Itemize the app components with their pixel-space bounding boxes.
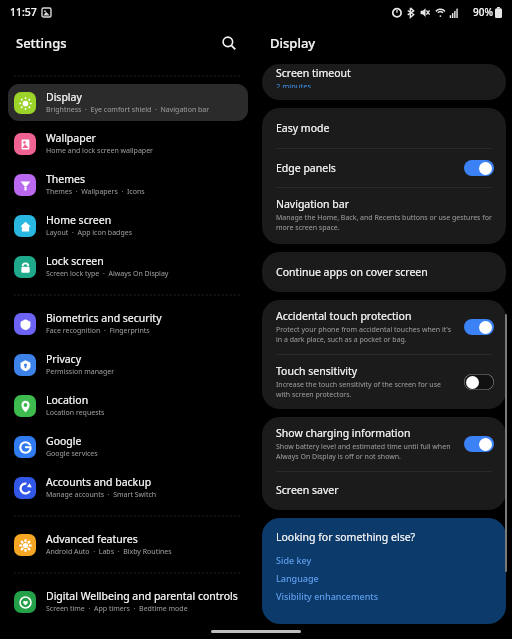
staticText: Brightness · Eye comfort shield · Naviga… xyxy=(46,105,210,115)
staticText: Visibility enhancements xyxy=(276,590,379,602)
button[interactable]: On xyxy=(464,160,494,176)
staticText: Manage the Home, Back, and Recents butto… xyxy=(276,213,494,233)
button[interactable]: Location xyxy=(8,387,248,424)
staticText: Easy mode xyxy=(276,121,330,135)
staticText: Android Auto · Labs · Bixby Routines xyxy=(46,547,172,557)
staticText: Increase the touch sensitivity of the sc… xyxy=(276,380,456,400)
staticText: Display xyxy=(46,90,82,104)
button[interactable]: Lock screen xyxy=(8,248,248,285)
staticText: Language xyxy=(276,572,319,584)
button[interactable]: Home screen xyxy=(8,207,248,244)
button[interactable]: Google xyxy=(8,428,248,465)
staticText: Biometrics and security xyxy=(46,311,162,325)
button[interactable]: On xyxy=(464,319,494,335)
button[interactable]: Edge panels xyxy=(262,149,506,187)
button[interactable]: Continue apps on cover screen xyxy=(262,252,506,292)
staticText: Screen timeout xyxy=(276,66,351,80)
staticText: Edge panels xyxy=(276,161,336,175)
button[interactable]: Search xyxy=(216,30,242,56)
staticText: Navigation bar xyxy=(276,197,350,211)
button[interactable]: Language xyxy=(276,569,492,587)
button[interactable]: Navigation bar xyxy=(262,188,506,244)
staticText: Screen saver xyxy=(276,483,339,497)
staticText: Google services xyxy=(46,449,98,459)
staticText: Permission manager xyxy=(46,367,115,377)
staticText: Advanced features xyxy=(46,532,138,546)
button[interactable]: Show charging information xyxy=(262,417,506,471)
staticText: Location xyxy=(46,393,89,407)
button[interactable]: Wallpaper xyxy=(8,125,248,162)
staticText: Face recognition · Fingerprints xyxy=(46,326,150,336)
staticText: Home and lock screen wallpaper xyxy=(46,146,153,156)
button[interactable]: Digital Wellbeing and parental controls xyxy=(8,583,248,620)
button[interactable]: Screen timeout xyxy=(262,64,506,100)
staticText: Manage accounts · Smart Switch xyxy=(46,490,157,500)
staticText: 90% xyxy=(473,5,493,19)
staticText: Touch sensitivity xyxy=(276,364,358,378)
staticText: Lock screen xyxy=(46,254,104,268)
staticText: 11:57 xyxy=(10,5,37,19)
button[interactable]: Side key xyxy=(276,551,492,569)
button[interactable]: Privacy xyxy=(8,346,248,383)
staticText: Side key xyxy=(276,554,312,566)
staticText: Wallpaper xyxy=(46,131,96,145)
button[interactable]: Advanced features xyxy=(8,526,248,563)
staticText: Accounts and backup xyxy=(46,475,152,489)
button[interactable]: Off xyxy=(464,374,494,390)
button[interactable]: Easy mode xyxy=(262,108,506,148)
staticText: Screen lock type · Always On Display xyxy=(46,269,169,279)
staticText: Looking for something else? xyxy=(276,530,416,544)
staticText: Themes xyxy=(46,172,86,186)
staticText: Layout · App icon badges xyxy=(46,228,133,238)
button[interactable]: Accidental touch protection xyxy=(262,300,506,354)
staticText: 2 minutes xyxy=(276,81,311,88)
staticText: Themes · Wallpapers · Icons xyxy=(46,187,145,197)
staticText: Privacy xyxy=(46,352,82,366)
staticText: Continue apps on cover screen xyxy=(276,265,428,279)
staticText: Display xyxy=(270,34,316,52)
staticText: Show charging information xyxy=(276,426,411,440)
button[interactable]: Touch sensitivity xyxy=(262,355,506,409)
staticText: Home screen xyxy=(46,213,112,227)
staticText: Protect your phone from accidental touch… xyxy=(276,325,456,345)
button[interactable]: On xyxy=(464,436,494,452)
button[interactable]: Display xyxy=(8,84,248,121)
staticText: Screen time · App timers · Bedtime mode xyxy=(46,604,188,614)
staticText: Settings xyxy=(16,34,67,52)
staticText: Location requests xyxy=(46,408,105,418)
staticText: Digital Wellbeing and parental controls xyxy=(46,589,238,603)
button[interactable]: Screen saver xyxy=(262,472,506,510)
button[interactable]: Accounts and backup xyxy=(8,469,248,506)
staticText: Google xyxy=(46,434,82,448)
staticText: Show battery level and estimated time un… xyxy=(276,442,456,462)
staticText: Accidental touch protection xyxy=(276,309,412,323)
button[interactable]: Biometrics and security xyxy=(8,305,248,342)
button[interactable]: Visibility enhancements xyxy=(276,587,492,605)
button[interactable]: Themes xyxy=(8,166,248,203)
